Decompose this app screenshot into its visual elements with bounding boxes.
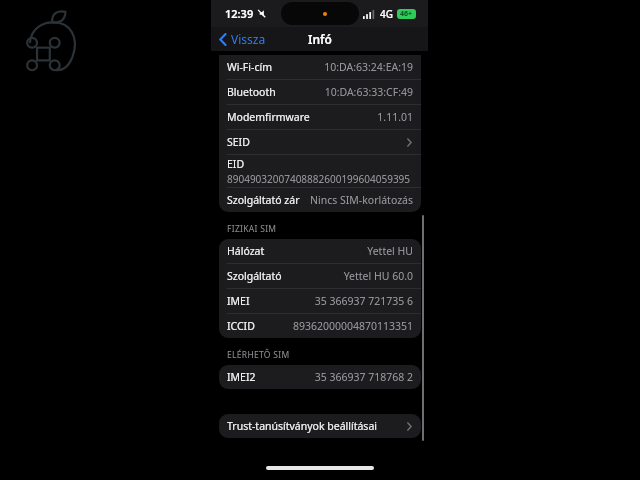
staticText: Hálózat (227, 244, 265, 258)
staticText: Szolgáltató zár (227, 193, 300, 207)
staticText: ICCID (227, 319, 255, 333)
staticText: Bluetooth (227, 85, 276, 99)
staticText: Yettel HU 60.0 (343, 269, 413, 283)
staticText: ELÉRHETŐ SIM (227, 349, 290, 361)
staticText: 35 366937 718768 2 (314, 370, 413, 384)
button[interactable]: Wi-Fi-cím (219, 55, 421, 79)
button[interactable]: Szolgáltató zár (219, 188, 421, 212)
button[interactable]: Hálózat (219, 239, 421, 263)
staticText: SEID (227, 135, 250, 149)
button[interactable]: Bluetooth (219, 80, 421, 104)
staticText: 10:DA:63:33:CF:49 (324, 85, 413, 99)
staticText: Vissza (231, 31, 266, 47)
button[interactable]: IMEI (219, 289, 421, 313)
other: Megnyitás (407, 138, 412, 147)
staticText: EID (227, 157, 245, 171)
button[interactable]: Modemfirmware (219, 105, 421, 129)
button[interactable]: Vissza (217, 29, 268, 49)
staticText: 35 366937 721735 6 (314, 294, 413, 308)
staticText: 4G (380, 7, 393, 21)
staticText: 1.11.01 (377, 110, 413, 124)
staticText: Nincs SIM-korlátozás (310, 193, 413, 207)
staticText: 12:39 (225, 6, 254, 21)
button[interactable]: IMEI2 (219, 365, 421, 389)
staticText: Infó (308, 31, 332, 47)
staticText: Szolgáltató (227, 269, 282, 283)
staticText: FIZIKAI SIM (227, 223, 277, 235)
staticText: 46+ (400, 9, 413, 19)
button[interactable]: Trust-tanúsítványok beállításai (219, 414, 421, 438)
staticText: 89049032007408882600199604059395 (227, 172, 411, 186)
other: Megnyitás (407, 422, 412, 431)
button[interactable]: EID (219, 155, 421, 187)
staticText: Wi-Fi-cím (227, 60, 272, 74)
button[interactable]: ICCID (219, 314, 421, 338)
staticText: Yettel HU (367, 244, 413, 258)
staticText: IMEI (227, 294, 250, 308)
button[interactable]: SEID (219, 130, 421, 154)
staticText: Trust-tanúsítványok beállításai (227, 419, 377, 433)
staticText: 89362000004870113351 (292, 319, 413, 333)
staticText: IMEI2 (227, 370, 256, 384)
staticText: 10:DA:63:24:EA:19 (324, 60, 413, 74)
staticText: Modemfirmware (227, 110, 310, 124)
button[interactable]: Szolgáltató (219, 264, 421, 288)
